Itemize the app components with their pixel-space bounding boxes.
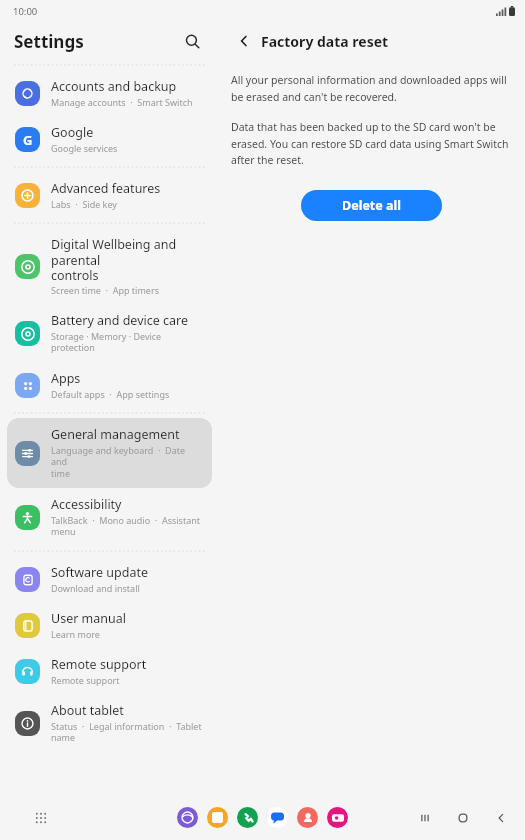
button[interactable]: Contacts	[297, 807, 318, 828]
staticText: Data that has been backed up to the SD c…	[231, 120, 511, 167]
staticText: About tablet	[51, 702, 124, 719]
button[interactable]: Back	[489, 806, 513, 830]
staticText: Manage accounts · Smart Switch	[51, 96, 193, 108]
staticText: TalkBack · Mono audio · Assistant menu	[51, 514, 201, 538]
staticText: Battery and device care	[51, 312, 189, 329]
staticText: Labs · Side key	[51, 198, 117, 210]
staticText: Screen time · App timers	[51, 284, 159, 296]
staticText: Remote support	[51, 656, 147, 673]
staticText: Delete all	[342, 197, 401, 214]
button[interactable]: G	[7, 116, 212, 162]
button[interactable]: Search	[178, 27, 206, 55]
button[interactable]: Accounts and backup	[7, 70, 212, 116]
button[interactable]: Apps	[28, 805, 54, 831]
button[interactable]: Accessibility	[7, 488, 212, 546]
staticText: Download and install	[51, 582, 140, 594]
staticText: Digital Wellbeing and parental controls	[51, 236, 202, 283]
button[interactable]: Back	[231, 28, 257, 54]
staticText: Learn more	[51, 628, 100, 640]
button[interactable]: User manual	[7, 602, 212, 648]
button[interactable]: General management	[7, 418, 212, 488]
staticText: Accounts and backup	[51, 78, 177, 95]
button[interactable]: Internet	[177, 807, 198, 828]
button[interactable]: Phone	[237, 807, 258, 828]
button[interactable]: Software update	[7, 556, 212, 602]
staticText: Google	[51, 124, 94, 141]
staticText: Remote support	[51, 674, 120, 686]
staticText: Settings	[14, 30, 84, 53]
staticText: All your personal information and downlo…	[231, 73, 511, 104]
staticText: Apps	[51, 370, 81, 387]
staticText: 10:00	[13, 5, 38, 18]
staticText: Storage · Memory · Device protection	[51, 330, 202, 354]
staticText: User manual	[51, 610, 126, 627]
button[interactable]: Advanced features	[7, 172, 212, 218]
staticText: Accessibility	[51, 496, 122, 513]
staticText: Software update	[51, 564, 148, 581]
button[interactable]: Remote support	[7, 648, 212, 694]
staticText: Default apps · App settings	[51, 388, 170, 400]
button[interactable]: Battery and device care	[7, 304, 212, 362]
button[interactable]: Home	[451, 806, 475, 830]
staticText: Google services	[51, 142, 118, 154]
staticText: Status · Legal information · Tablet name	[51, 720, 202, 744]
button[interactable]: Apps	[7, 362, 212, 408]
staticText: Factory data reset	[261, 32, 389, 51]
button[interactable]: My Files	[207, 807, 228, 828]
staticText: Advanced features	[51, 180, 161, 197]
button[interactable]: Recents	[413, 806, 437, 830]
button[interactable]: About tablet	[7, 694, 212, 752]
button[interactable]: Messages	[267, 807, 288, 828]
button[interactable]: Gallery	[327, 807, 348, 828]
button[interactable]: Delete all	[301, 190, 442, 221]
staticText: Language and keyboard · Date and time	[51, 444, 202, 480]
staticText: G	[23, 131, 33, 149]
staticText: General management	[51, 426, 180, 443]
button[interactable]: Digital Wellbeing and parental controls	[7, 228, 212, 304]
